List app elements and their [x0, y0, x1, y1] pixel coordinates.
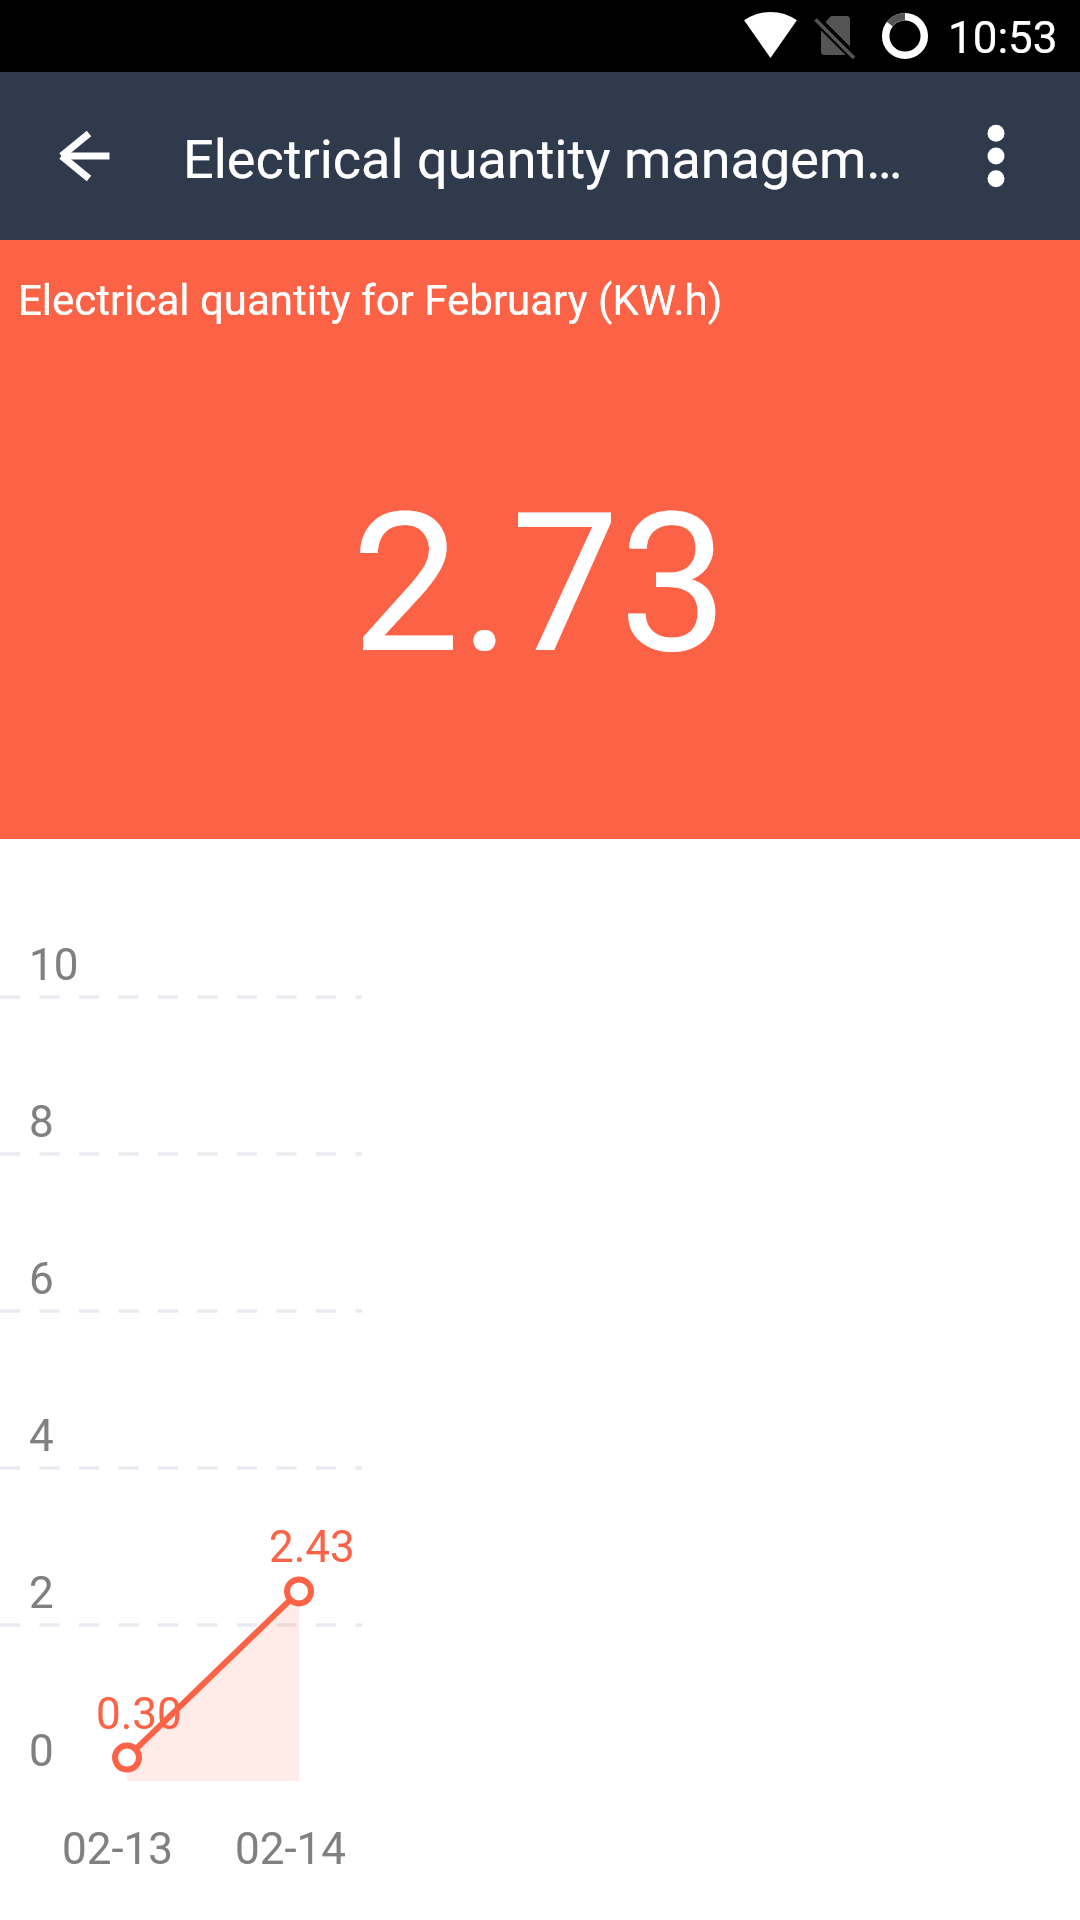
- button[interactable]: More options: [912, 72, 1080, 240]
- button[interactable]: Back: [0, 72, 168, 240]
- button[interactable]: [0, 240, 1080, 839]
